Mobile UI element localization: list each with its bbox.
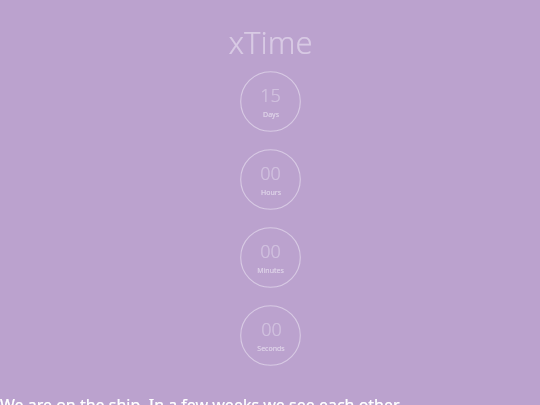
button[interactable]: 15 Days: [240, 71, 301, 132]
staticText: 00: [261, 317, 282, 342]
staticText: xTime: [228, 21, 313, 63]
staticText: 00: [260, 239, 281, 264]
staticText: We are on the ship. In a few weeks we se…: [0, 394, 400, 405]
button[interactable]: 00 Minutes: [240, 227, 301, 288]
staticText: Minutes: [257, 266, 284, 276]
button[interactable]: 00 Hours: [240, 149, 301, 210]
staticText: Seconds: [257, 344, 285, 354]
button[interactable]: 00 Seconds: [240, 305, 301, 366]
staticText: Hours: [261, 188, 281, 198]
staticText: 15: [260, 83, 281, 108]
staticText: 00: [260, 161, 281, 186]
staticText: Days: [263, 110, 279, 120]
